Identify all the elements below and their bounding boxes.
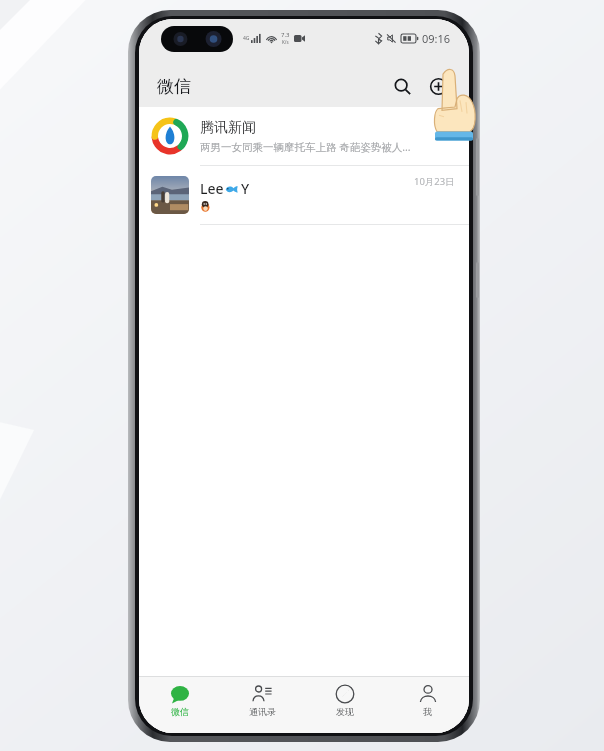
button[interactable]: Search [387, 71, 417, 101]
staticText: 7.3 [281, 31, 290, 39]
staticText: K/s [282, 39, 289, 45]
staticText: 10月23日 [414, 175, 455, 188]
staticText: 通讯录 [249, 706, 276, 717]
staticText: 微信 [157, 76, 191, 97]
button[interactable]: Lee [139, 166, 469, 225]
staticText: 微信 [171, 706, 189, 717]
staticText: 我 [423, 706, 432, 717]
staticText: 两男一女同乘一辆摩托车上路 奇葩姿势被人… [200, 140, 411, 154]
button[interactable]: 微信 [139, 677, 221, 723]
button[interactable]: 发现 [303, 677, 386, 723]
button[interactable]: 通讯录 [221, 677, 303, 723]
staticText: Y [241, 179, 250, 198]
staticText: 4G [243, 35, 250, 42]
staticText: 发现 [336, 706, 354, 717]
button[interactable]: 我 [386, 677, 469, 723]
button[interactable]: 腾讯新闻 [139, 107, 469, 166]
staticText: 腾讯新闻 [200, 119, 256, 137]
button[interactable]: Add [423, 71, 453, 101]
staticText: 09:16 [422, 31, 451, 46]
staticText: Lee [200, 179, 224, 198]
